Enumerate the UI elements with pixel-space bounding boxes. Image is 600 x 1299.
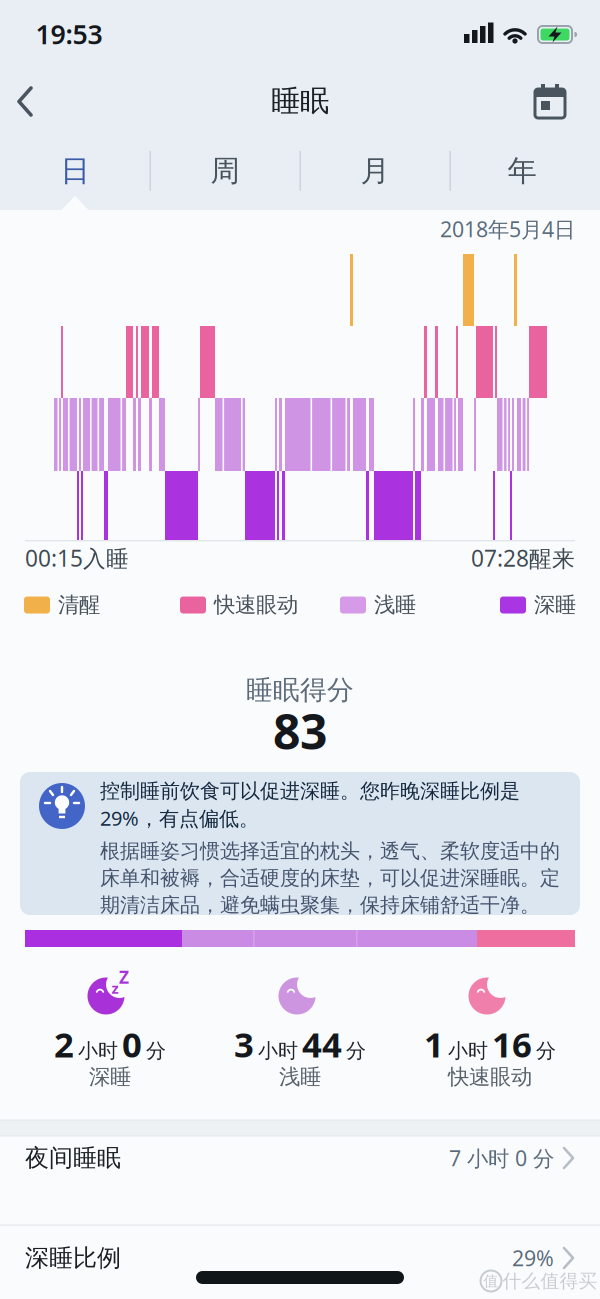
staticText: 浅睡	[279, 1064, 321, 1090]
staticText: 19:53	[35, 16, 102, 52]
staticText: 16	[492, 1021, 532, 1067]
staticText: 3	[234, 1021, 254, 1067]
staticText: 分	[536, 1038, 556, 1063]
staticText: 分	[346, 1038, 366, 1063]
staticText: 7 小时 0 分	[449, 1144, 554, 1172]
staticText: 小时	[448, 1038, 488, 1063]
staticText: 床单和被褥，合适硬度的床垫，可以促进深睡眠。定	[100, 866, 560, 890]
button[interactable]: 月	[305, 143, 445, 199]
staticText: 月	[360, 153, 389, 189]
staticText: 1	[424, 1021, 444, 1067]
staticText: 值	[483, 1272, 498, 1290]
staticText: 小时	[78, 1038, 118, 1063]
button[interactable]: Back	[0, 75, 50, 127]
staticText: 29%	[512, 1244, 554, 1272]
staticText: 睡眠	[271, 83, 329, 119]
staticText: 清醒	[58, 592, 100, 618]
staticText: 小时	[258, 1038, 298, 1063]
staticText: Z	[119, 965, 129, 988]
staticText: 深睡	[89, 1064, 131, 1090]
staticText: 周	[210, 153, 239, 189]
staticText: 控制睡前饮食可以促进深睡。您昨晚深睡比例是	[100, 779, 520, 803]
staticText: 什么值得买	[502, 1269, 597, 1292]
button[interactable]: Choose date	[528, 84, 572, 128]
staticText: 日	[60, 153, 89, 189]
staticText: 夜间睡眠	[25, 1143, 121, 1173]
staticText: 年	[507, 153, 536, 189]
staticText: 83	[273, 699, 327, 763]
staticText: 07:28醒来	[471, 543, 575, 573]
button[interactable]: 年	[452, 143, 592, 199]
staticText: 快速眼动	[448, 1064, 532, 1090]
staticText: 44	[302, 1021, 342, 1067]
staticText: 期清洁床品，避免螨虫聚集，保持床铺舒适干净。	[100, 893, 540, 917]
button[interactable]: 日	[5, 143, 145, 199]
staticText: 深睡	[534, 592, 576, 618]
staticText: 睡眠得分	[246, 674, 354, 706]
staticText: 29%，有点偏低。	[100, 805, 259, 831]
button[interactable]: 深睡比例	[0, 1226, 600, 1290]
staticText: 2	[54, 1021, 74, 1067]
staticText: 深睡比例	[25, 1243, 121, 1273]
staticText: 浅睡	[374, 592, 416, 618]
staticText: 根据睡姿习惯选择适宜的枕头，透气、柔软度适中的	[100, 839, 560, 863]
staticText: 2018年5月4日	[440, 215, 575, 243]
staticText: 0	[122, 1021, 142, 1067]
staticText: 00:15入睡	[25, 543, 129, 573]
button[interactable]: 夜间睡眠	[0, 1126, 600, 1190]
button[interactable]: 周	[155, 143, 295, 199]
staticText: 分	[146, 1038, 166, 1063]
staticText: 快速眼动	[214, 592, 298, 618]
staticText: z	[111, 978, 118, 998]
